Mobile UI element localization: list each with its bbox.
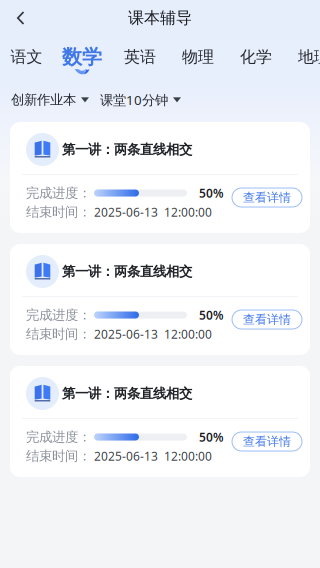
button[interactable]: 物理 xyxy=(169,36,227,77)
staticText: 语文 xyxy=(10,47,42,67)
button[interactable]: 课堂10分钟 xyxy=(100,91,181,109)
staticText: 2025-06-13 12:00:00 xyxy=(94,326,212,342)
button[interactable]: 创新作业本 xyxy=(11,92,89,108)
staticText: 结束时间： xyxy=(26,448,91,464)
staticText: 50% xyxy=(199,185,224,201)
staticText: 英语 xyxy=(124,47,156,67)
staticText: 结束时间： xyxy=(26,204,91,220)
staticText: 2025-06-13 12:00:00 xyxy=(94,204,212,220)
button[interactable]: 查看详情 xyxy=(232,432,302,451)
button[interactable]: Back xyxy=(6,3,36,33)
staticText: 地理 xyxy=(298,47,320,67)
staticText: 第一讲：两条直线相交 xyxy=(62,263,192,280)
button[interactable]: 语文 xyxy=(0,36,53,77)
button[interactable]: 地理 xyxy=(285,36,320,77)
staticText: 查看详情 xyxy=(243,312,291,327)
staticText: 第一讲：两条直线相交 xyxy=(62,385,192,402)
staticText: 查看详情 xyxy=(243,434,291,449)
staticText: 完成进度： xyxy=(26,307,91,323)
button[interactable]: 数学 xyxy=(53,36,111,77)
staticText: 50% xyxy=(199,307,224,323)
button[interactable]: 英语 xyxy=(111,36,169,77)
staticText: 完成进度： xyxy=(26,429,91,445)
staticText: 数学 xyxy=(62,45,102,69)
staticText: 2025-06-13 12:00:00 xyxy=(94,448,212,464)
staticText: 物理 xyxy=(182,47,214,67)
staticText: 化学 xyxy=(240,47,272,67)
button[interactable]: 化学 xyxy=(227,36,285,77)
staticText: 50% xyxy=(199,429,224,445)
staticText: 第一讲：两条直线相交 xyxy=(62,141,192,158)
staticText: 创新作业本 xyxy=(11,92,76,108)
staticText: 完成进度： xyxy=(26,185,91,201)
staticText: 查看详情 xyxy=(243,190,291,205)
staticText: 结束时间： xyxy=(26,326,91,342)
button[interactable]: 查看详情 xyxy=(232,188,302,207)
staticText: 课堂10分钟 xyxy=(100,91,168,109)
button[interactable]: 查看详情 xyxy=(232,310,302,329)
staticText: 课本辅导 xyxy=(128,8,192,28)
